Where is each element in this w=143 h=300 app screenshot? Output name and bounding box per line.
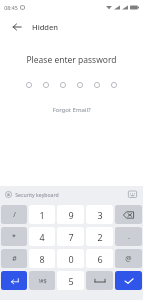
staticText: Security keyboard: [15, 191, 59, 198]
staticText: 0: [68, 253, 74, 265]
staticText: #: [12, 254, 17, 264]
button[interactable]: *: [1, 227, 27, 246]
staticText: 8: [39, 253, 45, 265]
staticText: 2: [97, 231, 103, 243]
staticText: @: [125, 254, 132, 264]
staticText: Forgot Email?: [52, 106, 91, 114]
button[interactable]: 5: [57, 271, 84, 290]
button[interactable]: 8: [29, 249, 55, 268]
button[interactable]: Backspace: [115, 205, 142, 224]
button[interactable]: Space: [86, 271, 113, 290]
button[interactable]: Keyboard settings: [127, 189, 138, 200]
staticText: .: [128, 232, 130, 242]
staticText: 6: [97, 253, 103, 265]
staticText: !#$: [38, 277, 47, 284]
staticText: *: [12, 232, 16, 242]
staticText: 9: [68, 209, 74, 221]
button[interactable]: 3: [86, 205, 113, 224]
staticText: Hidden: [32, 22, 58, 32]
staticText: 5: [68, 275, 74, 287]
button[interactable]: 7: [57, 227, 84, 246]
staticText: Please enter password: [26, 54, 117, 66]
button[interactable]: 9: [57, 205, 84, 224]
staticText: 1: [39, 209, 45, 221]
button[interactable]: 1: [29, 205, 55, 224]
staticText: 3: [97, 209, 103, 221]
button[interactable]: Back: [8, 18, 26, 36]
button[interactable]: /: [1, 205, 27, 224]
button[interactable]: Forgot Email?: [52, 106, 91, 114]
button[interactable]: Return: [1, 271, 27, 290]
button[interactable]: 2: [86, 227, 113, 246]
staticText: /: [13, 210, 16, 220]
staticText: 08:45: [4, 4, 18, 11]
button[interactable]: Confirm: [115, 271, 142, 290]
staticText: 7: [68, 231, 74, 243]
button[interactable]: 6: [86, 249, 113, 268]
button[interactable]: .: [115, 227, 142, 246]
button[interactable]: 4: [29, 227, 55, 246]
button[interactable]: 0: [57, 249, 84, 268]
staticText: 4: [39, 231, 45, 243]
button[interactable]: #: [1, 249, 27, 268]
button[interactable]: !#$: [29, 271, 55, 290]
button[interactable]: @: [115, 249, 142, 268]
